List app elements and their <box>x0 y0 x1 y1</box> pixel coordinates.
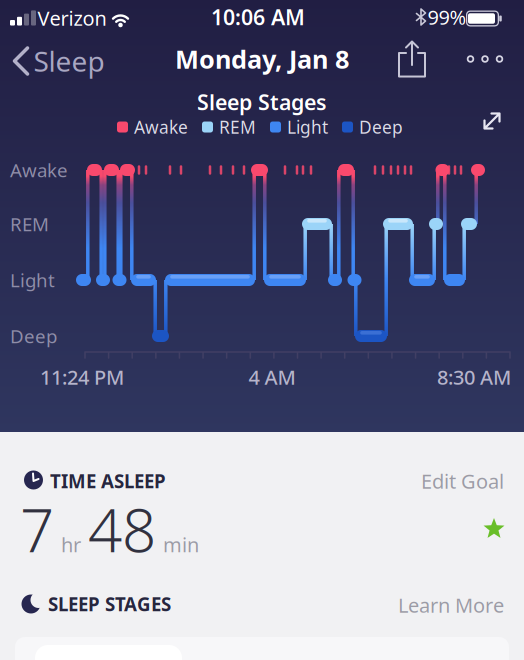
staticText: 4 AM <box>248 364 295 390</box>
staticText: Sleep <box>33 42 104 80</box>
staticText: Light <box>10 268 55 292</box>
staticText: Edit Goal <box>421 468 504 494</box>
staticText: Learn More <box>398 592 504 618</box>
staticText: 10:06 AM <box>211 3 305 31</box>
button[interactable]: Edit Goal <box>404 468 504 494</box>
staticText: Monday, Jan 8 <box>175 42 349 76</box>
staticText: min <box>163 531 199 558</box>
staticText: TIME ASLEEP <box>50 469 166 493</box>
button[interactable] <box>458 37 512 81</box>
staticText: Sleep Stages <box>197 88 327 116</box>
staticText: REM <box>219 115 256 138</box>
button[interactable] <box>470 99 514 143</box>
staticText: 7 <box>20 489 54 569</box>
staticText: REM <box>10 212 49 236</box>
staticText: Verizon <box>37 5 106 31</box>
button[interactable] <box>390 37 434 85</box>
button[interactable]: Learn More <box>394 592 504 618</box>
button[interactable]: Sleep <box>0 35 110 87</box>
staticText: Deep <box>359 115 403 138</box>
staticText: Awake <box>134 115 188 138</box>
staticText: 99% <box>427 4 466 30</box>
staticText: 11:24 PM <box>40 364 124 390</box>
staticText: Light <box>287 115 328 138</box>
button[interactable] <box>0 0 524 660</box>
staticText: SLEEP STAGES <box>48 592 171 616</box>
staticText: Awake <box>10 158 68 182</box>
staticText: Deep <box>10 324 57 348</box>
staticText: hr <box>61 531 81 558</box>
staticText: 8:30 AM <box>437 364 511 390</box>
staticText: 48 <box>88 489 156 569</box>
